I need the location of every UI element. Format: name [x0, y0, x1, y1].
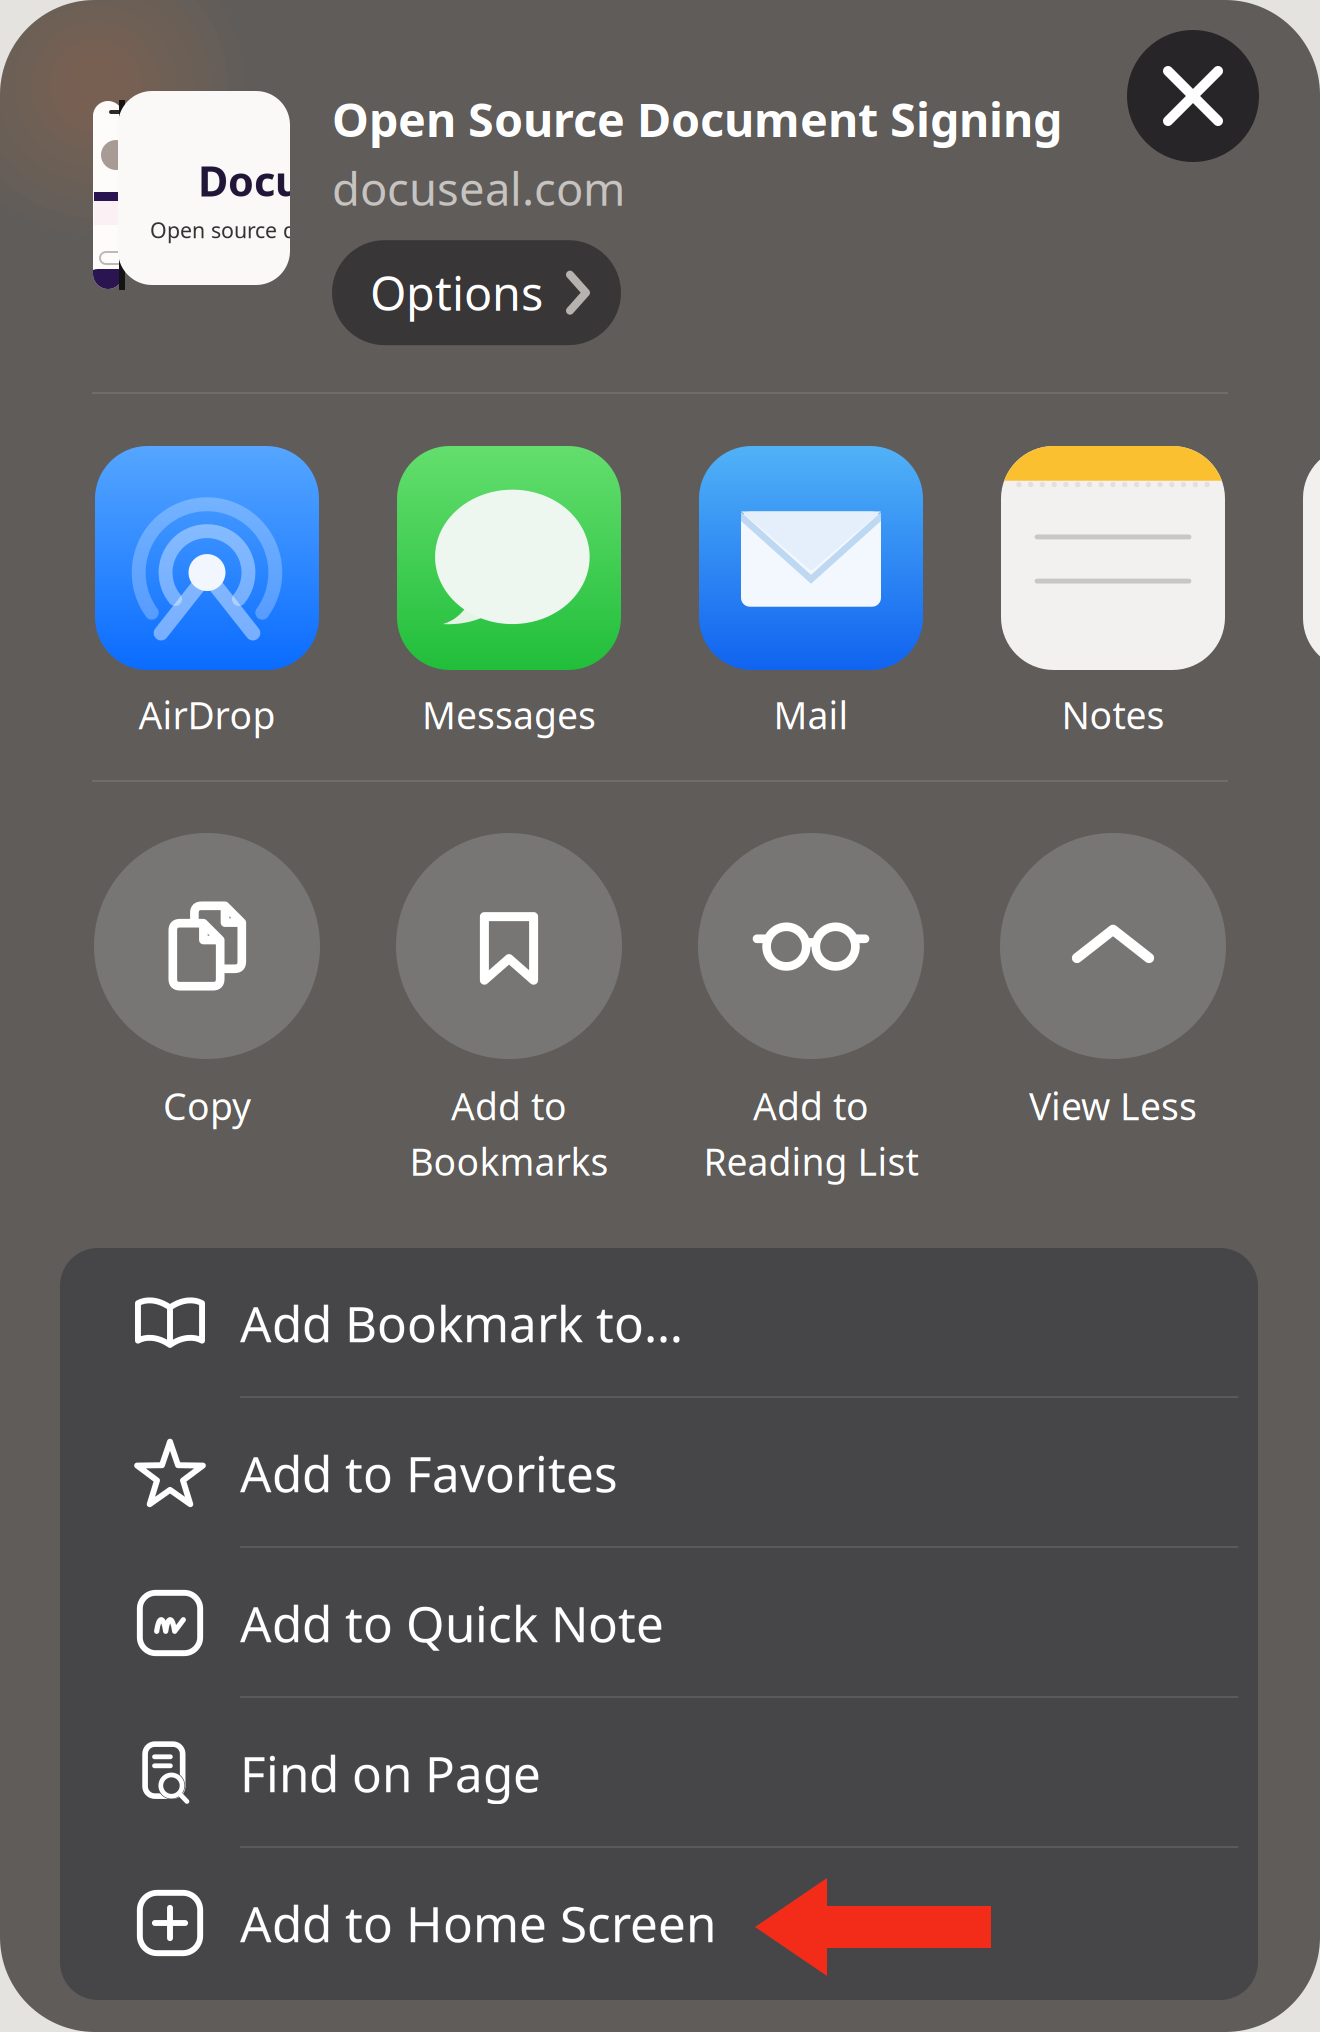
- staticText: Find on Page: [240, 1740, 541, 1806]
- staticText: Bookmarks: [409, 1137, 608, 1186]
- button[interactable]: Add to Favorites: [60, 1398, 1258, 1548]
- staticText: Mail: [773, 690, 848, 740]
- button[interactable]: Mail: [699, 446, 923, 766]
- button[interactable]: Add Bookmark to…: [60, 1248, 1258, 1398]
- button[interactable]: View Less: [968, 833, 1258, 1193]
- button[interactable]: Messages: [397, 446, 621, 766]
- staticText: Add to Quick Note: [240, 1590, 664, 1656]
- button[interactable]: Copy: [62, 833, 352, 1193]
- staticText: View Less: [1029, 1081, 1197, 1131]
- staticText: AirDrop: [138, 690, 275, 740]
- staticText: Add to: [451, 1081, 567, 1131]
- button[interactable]: Close: [1127, 30, 1259, 162]
- staticText: Add to Home Screen: [240, 1890, 716, 1956]
- button[interactable]: Add to Home Screen: [60, 1848, 1258, 1998]
- staticText: Options: [370, 262, 543, 324]
- button[interactable]: Options: [332, 240, 621, 345]
- button[interactable]: Find on Page: [60, 1698, 1258, 1848]
- staticText: Reading List: [703, 1137, 918, 1186]
- button[interactable]: Notes: [1001, 446, 1225, 766]
- button[interactable]: Add to: [364, 833, 654, 1193]
- staticText: Notes: [1061, 690, 1164, 740]
- button[interactable]: Add to Quick Note: [60, 1548, 1258, 1698]
- staticText: Add to Favorites: [240, 1440, 618, 1506]
- staticText: Copy: [163, 1081, 251, 1131]
- button[interactable]: AirDrop: [95, 446, 319, 766]
- staticText: DocuSeal: [198, 153, 387, 208]
- staticText: Open Source Document Signing: [332, 88, 1062, 150]
- staticText: Open source digital document signing: [150, 216, 535, 244]
- staticText: Add to: [753, 1081, 869, 1131]
- staticText: Add Bookmark to…: [240, 1290, 683, 1356]
- staticText: docuseal.com: [332, 158, 625, 218]
- staticText: Messages: [422, 690, 596, 740]
- button[interactable]: Add to: [666, 833, 956, 1193]
